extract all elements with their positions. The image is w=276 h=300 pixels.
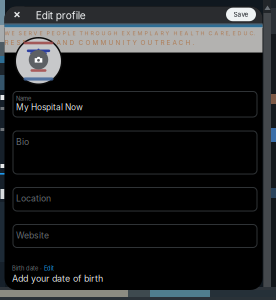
staticText: Location (16, 193, 51, 204)
staticText: My Hospital Now (16, 102, 83, 112)
staticText: Edit (44, 265, 54, 272)
button[interactable]: Website (13, 224, 257, 247)
staticText: · (40, 265, 42, 272)
staticText: W E S E R V E P E O P L E T H R O U G H … (4, 30, 255, 37)
staticText: Edit profile (36, 9, 86, 22)
staticText: Save (233, 11, 248, 18)
staticText: Website (16, 230, 49, 241)
staticText: R E S E A R C H A N D C O M M U N I T Y … (4, 39, 194, 46)
staticText: Add your date of birth (12, 273, 103, 284)
button[interactable]: Change profile photo (14, 37, 62, 85)
staticText: Bio (16, 137, 29, 147)
button[interactable]: Save (226, 8, 256, 21)
button[interactable]: Close (9, 6, 24, 23)
staticText: Name (16, 95, 31, 102)
staticText: Birth date (12, 265, 38, 272)
button[interactable]: Location (13, 187, 257, 211)
button[interactable]: Bio (13, 131, 257, 174)
button[interactable]: Birth date (12, 264, 256, 286)
button[interactable]: Name (13, 91, 257, 117)
